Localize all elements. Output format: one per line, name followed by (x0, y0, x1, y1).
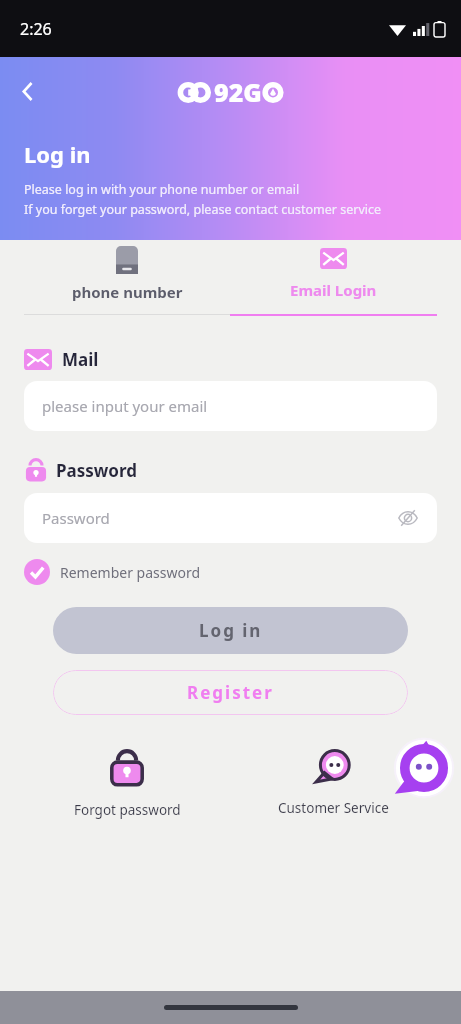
button[interactable]: please input your email (24, 381, 437, 431)
staticText: phone number (72, 282, 183, 302)
button[interactable]: Log in (53, 607, 408, 654)
staticText: 2:26 (20, 18, 52, 40)
staticText: Forgot password (74, 801, 181, 819)
button[interactable]: phone number (24, 240, 230, 302)
staticText: Customer Service (278, 799, 389, 817)
button[interactable]: Back (8, 71, 48, 111)
staticText: Mail (62, 348, 99, 371)
button[interactable]: Email Login (230, 240, 437, 300)
button[interactable]: Customer Service (230, 731, 437, 817)
button[interactable]: Forgot password (24, 731, 230, 819)
button[interactable]: Show password (393, 503, 423, 533)
staticText: Please log in with your phone number or … (24, 181, 300, 198)
button[interactable]: Register (53, 670, 408, 715)
staticText: 92G (214, 75, 262, 109)
button[interactable]: Open customer service chat (393, 737, 455, 799)
staticText: Password (42, 508, 110, 528)
staticText: Password (56, 459, 137, 482)
button[interactable]: Password (24, 493, 437, 543)
staticText: Email Login (290, 280, 377, 300)
staticText: If you forget your password, please cont… (24, 201, 382, 218)
staticText: Register (187, 681, 274, 704)
button[interactable]: Remember password (24, 559, 201, 585)
staticText: Log in (24, 139, 91, 169)
staticText: Log in (199, 619, 263, 642)
staticText: please input your email (42, 396, 208, 416)
staticText: Remember password (60, 563, 201, 582)
